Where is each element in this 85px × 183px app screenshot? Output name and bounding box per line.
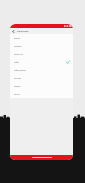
- staticText: English: [14, 37, 21, 39]
- staticText: Darkmode: [17, 30, 29, 33]
- staticText: Тоҷикӣ: [14, 85, 21, 87]
- button[interactable]: English: [10, 34, 73, 42]
- button[interactable]: Ўзбек (кирил): [10, 66, 73, 74]
- button[interactable]: Русский: [10, 74, 73, 82]
- button[interactable]: Қазақша: [10, 42, 73, 50]
- staticText: Ўзбек: [14, 61, 19, 63]
- staticText: Кыргызча: [14, 53, 23, 55]
- button[interactable]: Back: [11, 29, 16, 34]
- button[interactable]: Тоҷикӣ: [10, 82, 73, 90]
- button[interactable]: Ўзбек: [10, 58, 73, 66]
- button[interactable]: Кыргызча: [10, 50, 73, 58]
- staticText: Türkçe: [14, 93, 20, 95]
- staticText: Русский: [14, 77, 21, 79]
- staticText: Қазақша: [14, 45, 22, 47]
- button[interactable]: Türkçe: [10, 90, 73, 98]
- staticText: Ўзбек (кирил): [14, 69, 26, 71]
